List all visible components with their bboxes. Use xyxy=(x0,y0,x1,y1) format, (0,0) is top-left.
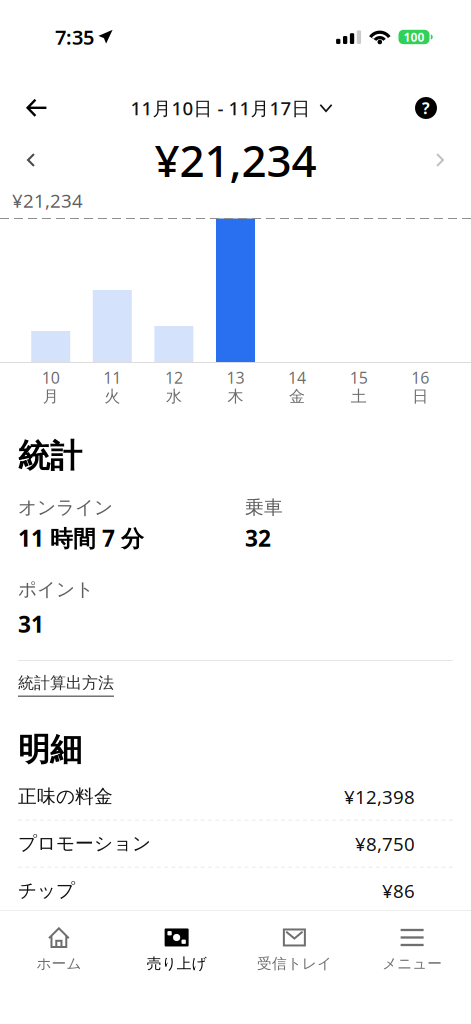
staticText: 14 xyxy=(288,367,306,388)
staticText: 火 xyxy=(104,387,120,406)
staticText: 7:35 xyxy=(55,24,94,50)
staticText: 16 xyxy=(411,367,429,388)
button[interactable]: Next week xyxy=(415,138,465,182)
staticText: 木 xyxy=(227,387,243,406)
staticText: 13 xyxy=(226,367,244,388)
staticText: 11 xyxy=(103,367,121,388)
button[interactable]: ホーム xyxy=(0,917,118,979)
staticText: 100 xyxy=(403,29,424,45)
staticText: ? xyxy=(422,97,430,119)
staticText: 日 xyxy=(412,387,428,406)
staticText: 金 xyxy=(289,387,305,406)
button[interactable]: 統計算出方法 xyxy=(18,661,128,707)
staticText: 統計算出方法 xyxy=(18,673,114,693)
staticText: 売り上げ xyxy=(147,954,207,972)
staticText: 正味の料金 xyxy=(18,785,113,808)
staticText: 水 xyxy=(166,387,182,406)
button[interactable]: 正味の料金 xyxy=(0,774,471,820)
button[interactable]: チップ xyxy=(0,868,471,914)
staticText: チップ xyxy=(18,879,75,902)
button[interactable]: 売り上げ xyxy=(118,917,236,979)
staticText: 土 xyxy=(351,387,367,406)
staticText: 乗車 xyxy=(245,496,283,519)
staticText: ¥8,750 xyxy=(355,831,415,856)
staticText: 明細 xyxy=(18,730,82,769)
button[interactable]: Back xyxy=(11,86,63,130)
staticText: 12 xyxy=(165,367,183,388)
staticText: オンライン xyxy=(18,496,113,519)
staticText: ホーム xyxy=(36,954,81,972)
button[interactable]: Previous week xyxy=(6,138,56,182)
staticText: 月 xyxy=(43,387,59,406)
staticText: 31 xyxy=(18,609,44,639)
staticText: プロモーション xyxy=(18,832,151,855)
button[interactable]: 11月10日 - 11月17日 xyxy=(130,86,332,130)
staticText: 11 時間 7 分 xyxy=(18,523,144,553)
staticText: 15 xyxy=(350,367,368,388)
staticText: ¥21,234 xyxy=(12,188,83,213)
staticText: 11月10日 - 11月17日 xyxy=(130,96,310,120)
staticText: ¥86 xyxy=(382,878,415,903)
button[interactable]: 受信トレイ xyxy=(235,917,353,979)
staticText: ¥12,398 xyxy=(344,784,415,809)
staticText: 10 xyxy=(42,367,60,388)
staticText: ¥21,234 xyxy=(154,131,316,189)
button[interactable]: Help xyxy=(400,86,452,130)
button[interactable]: メニュー xyxy=(353,917,471,979)
staticText: ポイント xyxy=(18,578,94,601)
staticText: 32 xyxy=(245,523,271,553)
staticText: 受信トレイ xyxy=(257,954,332,972)
staticText: 統計 xyxy=(18,436,82,476)
staticText: メニュー xyxy=(382,954,442,972)
button[interactable]: プロモーション xyxy=(0,821,471,867)
